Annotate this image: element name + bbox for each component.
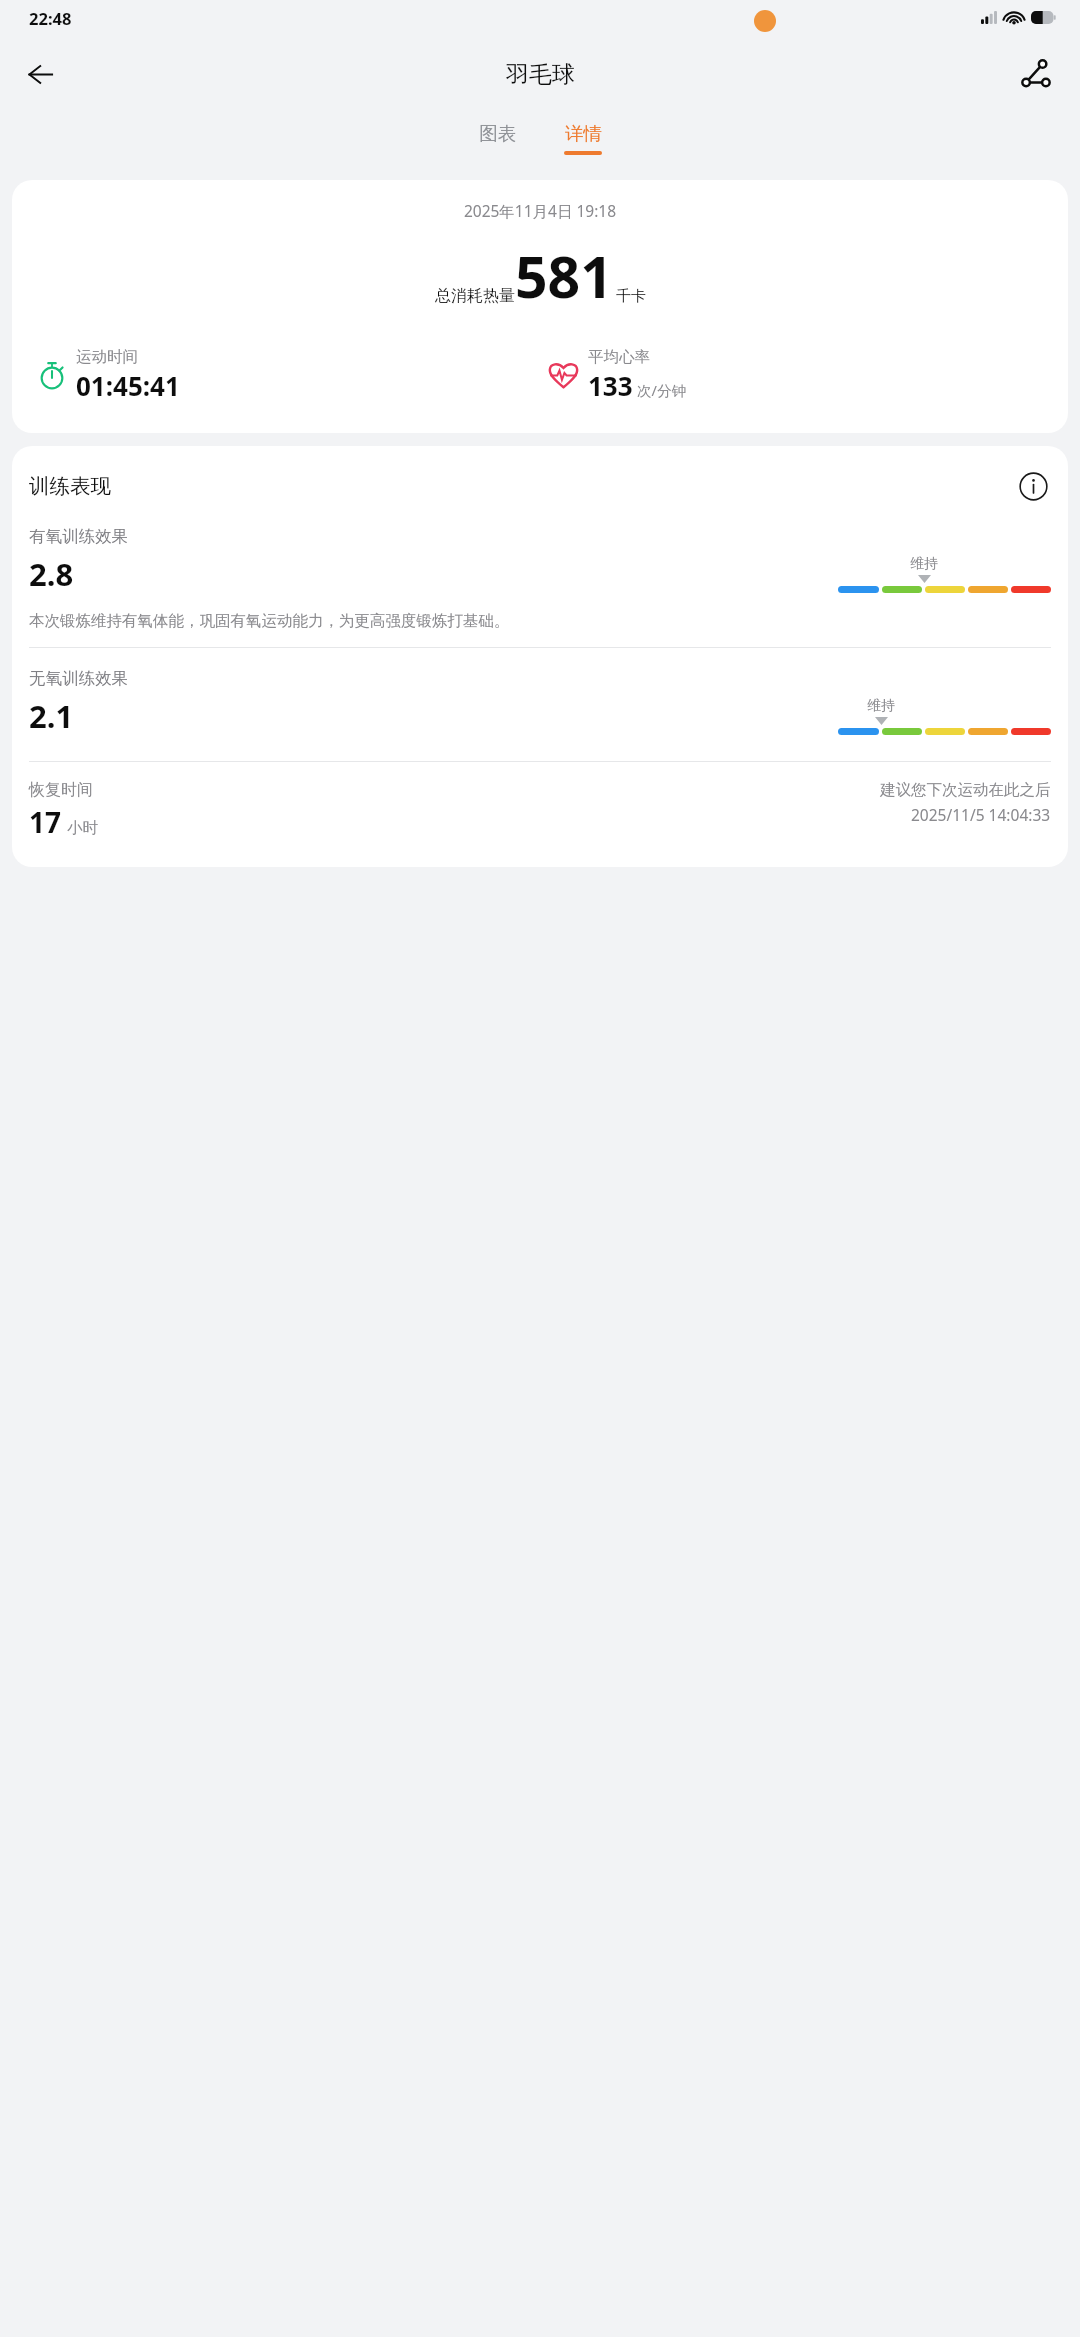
staticText: 133 <box>588 368 633 403</box>
button[interactable]: Back <box>14 48 66 100</box>
staticText: 图表 <box>479 122 516 145</box>
button[interactable]: 2025年11月4日 19:18 <box>12 180 1068 433</box>
staticText: 维持 <box>910 555 938 573</box>
staticText: 2.8 <box>29 553 74 595</box>
staticText: 羽毛球 <box>506 60 575 89</box>
staticText: 千卡 <box>616 287 646 306</box>
staticText: 2025/11/5 14:04:33 <box>911 804 1051 825</box>
staticText: 建议您下次运动在此之后 <box>880 780 1051 800</box>
staticText: 恢复时间 <box>29 780 93 800</box>
staticText: 总消耗热量 <box>435 286 515 306</box>
staticText: 581 <box>515 237 613 315</box>
staticText: 22:48 <box>29 7 72 29</box>
staticText: 训练表现 <box>29 473 111 499</box>
staticText: 平均心率 <box>588 347 650 367</box>
button[interactable]: Info <box>1015 468 1051 504</box>
staticText: 运动时间 <box>76 347 138 367</box>
staticText: 01:45:41 <box>76 368 180 403</box>
staticText: 有氧训练效果 <box>29 526 128 547</box>
button[interactable]: 运动时间 <box>33 343 184 407</box>
staticText: 维持 <box>867 697 895 715</box>
button[interactable]: 平均心率 <box>544 343 690 407</box>
staticText: 次/分钟 <box>637 380 686 400</box>
staticText: 详情 <box>565 122 602 145</box>
staticText: 17 <box>29 803 62 841</box>
staticText: 小时 <box>67 818 98 838</box>
button[interactable]: Share <box>1010 48 1062 100</box>
staticText: 无氧训练效果 <box>29 668 128 689</box>
button[interactable]: 图表 <box>464 118 530 159</box>
button[interactable]: 详情 <box>550 118 616 159</box>
staticText: 2025年11月4日 19:18 <box>12 200 1068 221</box>
staticText: 本次锻炼维持有氧体能，巩固有氧运动能力，为更高强度锻炼打基础。 <box>29 611 510 631</box>
staticText: 2.1 <box>29 695 74 737</box>
